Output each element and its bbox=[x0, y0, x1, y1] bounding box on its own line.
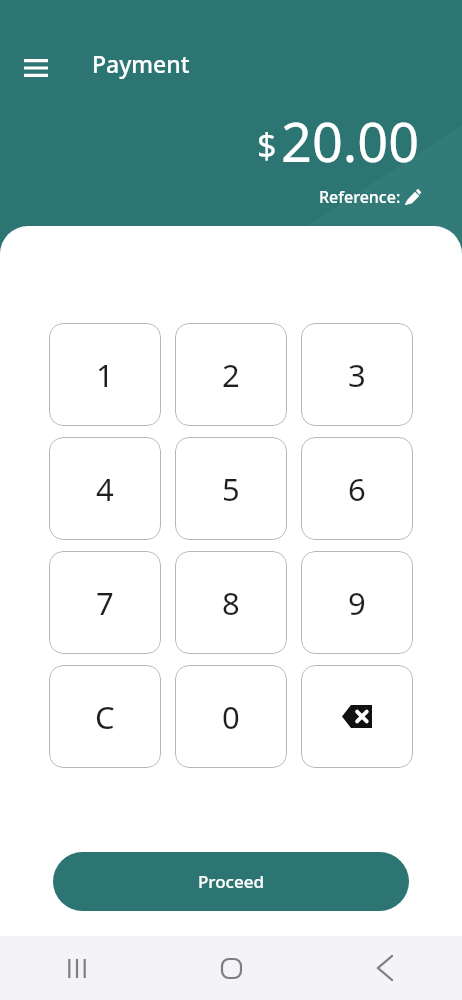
button[interactable]: 5 bbox=[175, 437, 287, 540]
button[interactable]: Backspace bbox=[301, 665, 413, 768]
staticText: 20.00 bbox=[281, 104, 420, 178]
button[interactable]: 6 bbox=[301, 437, 413, 540]
button[interactable]: Home bbox=[154, 936, 308, 1000]
button[interactable]: 3 bbox=[301, 323, 413, 426]
button[interactable]: Proceed bbox=[53, 852, 409, 911]
button[interactable]: 8 bbox=[175, 551, 287, 654]
staticText: C bbox=[95, 696, 115, 738]
staticText: 9 bbox=[348, 582, 366, 624]
button[interactable]: 4 bbox=[49, 437, 161, 540]
staticText: 3 bbox=[348, 354, 366, 396]
staticText: Proceed bbox=[198, 870, 265, 893]
staticText: 6 bbox=[348, 468, 366, 510]
staticText: 2 bbox=[222, 354, 240, 396]
staticText: Payment bbox=[92, 48, 190, 79]
staticText: Reference: bbox=[319, 186, 401, 208]
button[interactable]: C bbox=[49, 665, 161, 768]
other: Edit reference bbox=[403, 188, 422, 207]
staticText: 0 bbox=[222, 696, 240, 738]
button[interactable]: Back bbox=[308, 936, 462, 1000]
staticText: 5 bbox=[222, 468, 240, 510]
staticText: 1 bbox=[96, 354, 114, 396]
staticText: 7 bbox=[96, 582, 114, 624]
button[interactable]: Recent apps bbox=[0, 936, 154, 1000]
staticText: $ bbox=[257, 122, 277, 168]
button[interactable]: 1 bbox=[49, 323, 161, 426]
button[interactable]: 0 bbox=[175, 665, 287, 768]
button[interactable]: 7 bbox=[49, 551, 161, 654]
button[interactable]: Open navigation menu bbox=[10, 42, 62, 94]
button[interactable]: 2 bbox=[175, 323, 287, 426]
button[interactable]: Reference: bbox=[315, 184, 426, 210]
button[interactable]: 9 bbox=[301, 551, 413, 654]
staticText: 8 bbox=[222, 582, 240, 624]
staticText: 4 bbox=[96, 468, 114, 510]
